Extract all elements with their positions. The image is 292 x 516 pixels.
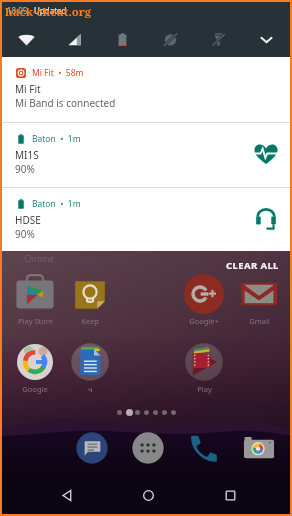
staticText: Google bbox=[22, 384, 48, 394]
button[interactable]: Home bbox=[135, 476, 161, 514]
staticText: Chrome bbox=[24, 253, 54, 264]
button[interactable]: Camera bbox=[243, 432, 275, 464]
button[interactable]: Google bbox=[12, 342, 58, 394]
button[interactable]: Play Store bbox=[12, 274, 58, 326]
staticText: Updated bbox=[34, 5, 67, 16]
staticText: 90% bbox=[15, 227, 35, 241]
staticText: Baton • 1m bbox=[32, 198, 81, 210]
button[interactable]: Play bbox=[181, 342, 227, 394]
staticText: Google+ bbox=[189, 316, 219, 326]
button[interactable]: ч bbox=[67, 342, 113, 394]
staticText: HDSE bbox=[15, 213, 41, 227]
button[interactable]: Do not disturb bbox=[146, 21, 194, 57]
button[interactable]: Google+ bbox=[181, 274, 227, 326]
staticText: Mi Fit bbox=[15, 82, 41, 96]
staticText: MI1S bbox=[15, 148, 39, 162]
staticText: Play bbox=[197, 384, 212, 394]
staticText: Play Store bbox=[18, 316, 53, 326]
staticText: Keep bbox=[81, 316, 99, 326]
button[interactable]: Battery bbox=[98, 21, 146, 57]
button[interactable]: Phone bbox=[188, 432, 220, 464]
staticText: CLEAR ALL bbox=[226, 259, 279, 272]
button[interactable]: Recent apps bbox=[217, 476, 243, 514]
button[interactable]: Flashlight bbox=[194, 21, 242, 57]
button[interactable]: Keep bbox=[67, 274, 113, 326]
button[interactable]: Expand quick settings bbox=[242, 21, 290, 57]
button[interactable]: Gmail bbox=[236, 274, 282, 326]
staticText: hack-cheat.org bbox=[5, 4, 92, 20]
button[interactable]: Baton • 1m bbox=[2, 188, 290, 251]
staticText: Mi Band is connected bbox=[15, 96, 116, 110]
button[interactable]: Mi Fit • 58m bbox=[2, 57, 290, 122]
staticText: 18:05 bbox=[7, 5, 28, 16]
button[interactable]: Wi-Fi bbox=[2, 21, 50, 57]
button[interactable]: Baton • 1m bbox=[2, 123, 290, 187]
button[interactable]: Mobile signal bbox=[50, 21, 98, 57]
staticText: Mi Fit • 58m bbox=[32, 67, 84, 79]
button[interactable]: All apps bbox=[132, 432, 164, 464]
staticText: Gmail bbox=[249, 316, 270, 326]
button[interactable]: CLEAR ALL bbox=[221, 256, 284, 275]
staticText: 90% bbox=[15, 162, 35, 176]
button[interactable]: Back bbox=[54, 476, 80, 514]
staticText: ч bbox=[88, 384, 93, 394]
staticText: Baton • 1m bbox=[32, 133, 81, 145]
button[interactable]: Messages bbox=[76, 432, 108, 464]
